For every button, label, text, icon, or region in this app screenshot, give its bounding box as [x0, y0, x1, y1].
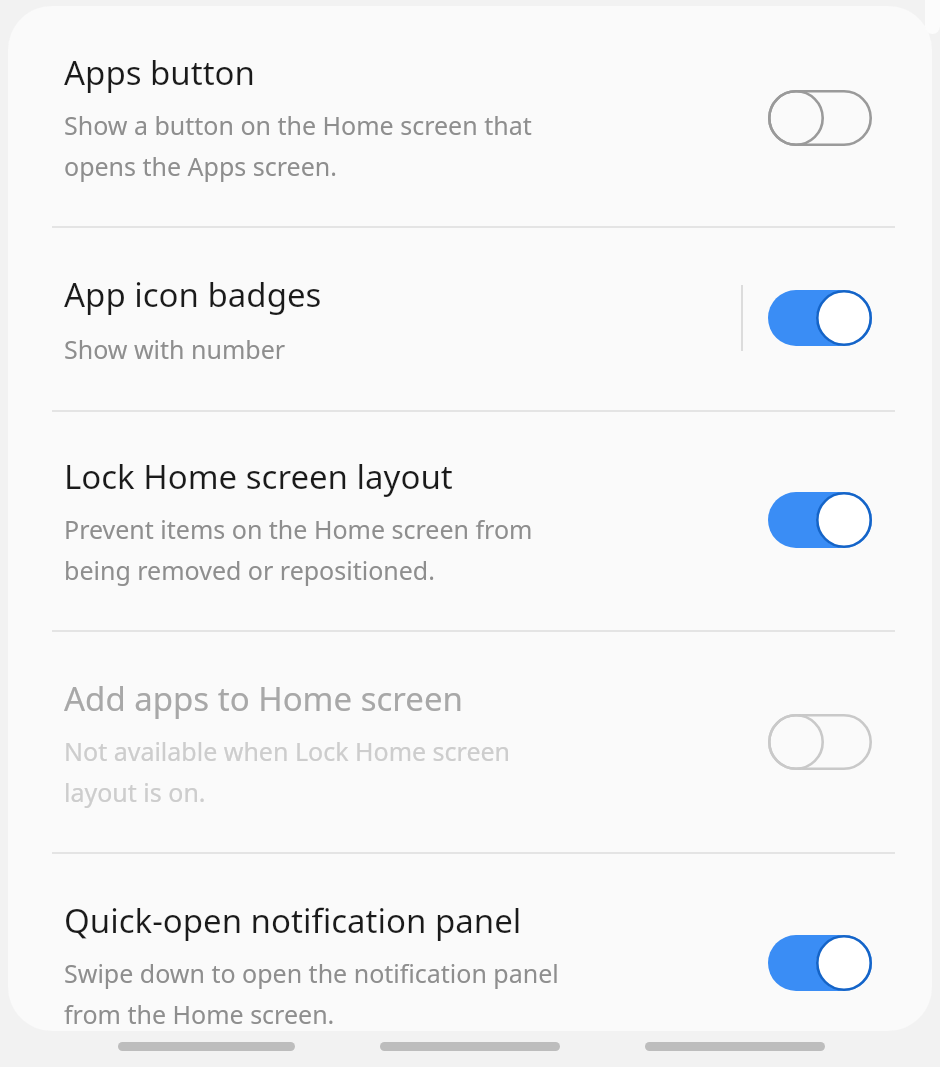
staticText: Apps button	[64, 50, 724, 95]
button[interactable]: Home	[370, 1028, 570, 1065]
staticText: Quick-open notification panel	[64, 898, 724, 943]
staticText: Swipe down to open the notification pane…	[64, 956, 744, 1032]
button[interactable]: Lock Home screen layout	[754, 478, 886, 562]
button[interactable]	[8, 646, 932, 802]
button[interactable]	[8, 236, 932, 378]
button[interactable]: Back	[635, 1028, 835, 1065]
button[interactable]: Add apps to Home screen	[754, 700, 886, 784]
staticText: Lock Home screen layout	[64, 454, 724, 499]
staticText: App icon badges	[64, 272, 724, 317]
button[interactable]: App icon badges	[754, 276, 886, 360]
staticText: Show with number	[64, 332, 744, 366]
staticText: Show a button on the Home screen that op…	[64, 108, 744, 184]
button[interactable]: Quick-open notification panel	[754, 921, 886, 1005]
button[interactable]	[8, 426, 932, 580]
staticText: Not available when Lock Home screen layo…	[64, 734, 744, 810]
button[interactable]	[8, 866, 932, 1023]
button[interactable]: Apps button	[754, 76, 886, 160]
button[interactable]	[8, 26, 932, 178]
staticText: Add apps to Home screen	[64, 676, 724, 721]
button[interactable]: Recents	[108, 1028, 305, 1065]
staticText: Prevent items on the Home screen from be…	[64, 512, 744, 588]
